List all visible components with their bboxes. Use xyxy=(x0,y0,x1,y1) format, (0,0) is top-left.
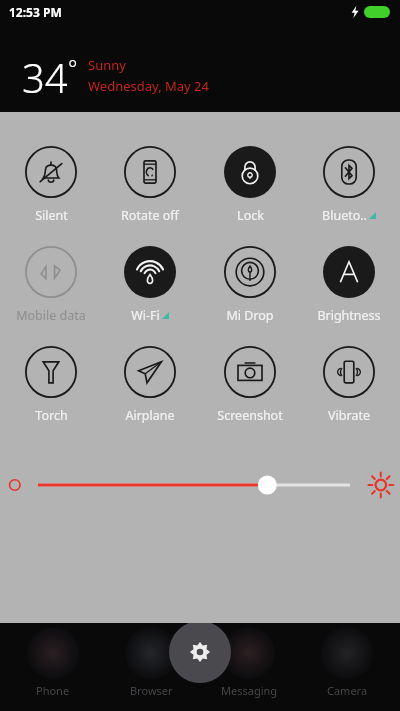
button[interactable]: Blueto.. xyxy=(301,146,397,224)
button[interactable]: Messaging xyxy=(204,627,294,698)
button[interactable]: Phone xyxy=(8,627,98,698)
button[interactable]: 34 xyxy=(22,50,209,104)
button[interactable]: Camera xyxy=(302,627,392,698)
button[interactable]: Brightness xyxy=(301,246,397,324)
staticText: Camera xyxy=(327,683,368,698)
staticText: Silent xyxy=(35,207,68,224)
staticText: Browser xyxy=(130,683,173,698)
button[interactable]: Wi-Fi xyxy=(102,246,198,324)
button[interactable]: Airplane xyxy=(102,346,198,424)
staticText: Blueto.. xyxy=(322,207,367,224)
button[interactable]: Vibrate xyxy=(301,346,397,424)
staticText: Mi Drop xyxy=(226,307,274,324)
button[interactable]: Settings xyxy=(169,621,231,683)
button[interactable]: Torch xyxy=(3,346,99,424)
button[interactable]: Lock xyxy=(202,146,298,224)
staticText: 12:53 PM xyxy=(9,4,62,20)
button[interactable]: Mi Drop xyxy=(202,246,298,324)
staticText: Airplane xyxy=(125,407,175,424)
button[interactable]: Browser xyxy=(106,627,196,698)
staticText: Messaging xyxy=(221,683,278,698)
staticText: Sunny xyxy=(88,56,126,74)
staticText: Brightness xyxy=(317,307,381,324)
staticText: Screenshot xyxy=(217,407,283,424)
staticText: ° xyxy=(68,52,78,82)
staticText: Rotate off xyxy=(121,207,179,224)
staticText: Phone xyxy=(36,683,70,698)
staticText: Torch xyxy=(35,407,68,424)
staticText: Vibrate xyxy=(328,407,370,424)
staticText: 34 xyxy=(22,50,68,104)
staticText: Wi-Fi xyxy=(131,307,160,324)
button[interactable]: Rotate off xyxy=(102,146,198,224)
staticText: Mobile data xyxy=(16,307,86,324)
staticText: Wednesday, May 24 xyxy=(88,77,209,95)
staticText: Lock xyxy=(237,207,264,224)
button[interactable]: Silent xyxy=(3,146,99,224)
button[interactable]: Screenshot xyxy=(202,346,298,424)
button[interactable]: Mobile data xyxy=(3,246,99,324)
button[interactable]: Brightness slider xyxy=(0,462,400,508)
